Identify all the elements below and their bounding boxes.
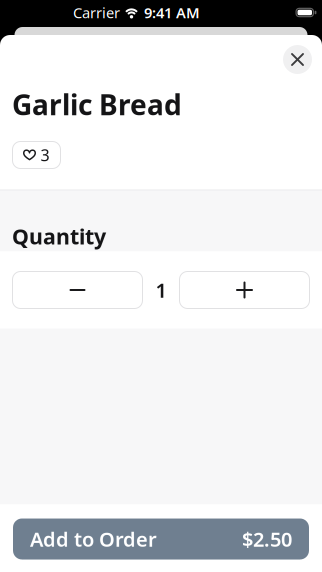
staticText: 1 [155, 277, 166, 303]
button[interactable]: Close [283, 45, 312, 74]
staticText: Carrier [73, 3, 120, 22]
staticText: 3 [40, 144, 49, 166]
staticText: Quantity [12, 222, 106, 250]
button[interactable]: Increase quantity [179, 271, 310, 309]
button[interactable]: Add to Order [13, 518, 309, 559]
button[interactable]: Decrease quantity [12, 271, 143, 309]
staticText: Add to Order [30, 526, 157, 552]
button[interactable]: Likes [12, 141, 61, 169]
staticText: $2.50 [242, 526, 292, 552]
staticText: 9:41 AM [144, 3, 200, 22]
staticText: Garlic Bread [12, 86, 182, 123]
